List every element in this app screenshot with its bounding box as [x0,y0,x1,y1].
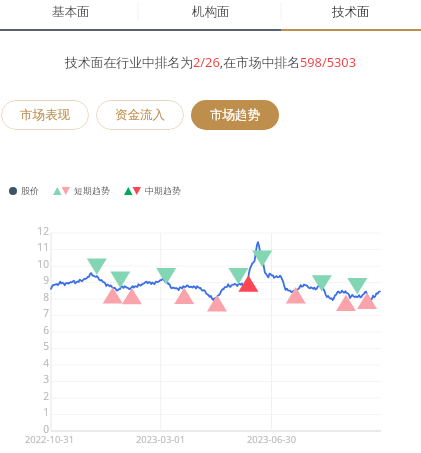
staticText: 11 [37,240,49,254]
staticText: 中期趋势 [145,185,181,196]
staticText: 股价 [21,185,39,196]
staticText: 市场趋势 [210,107,260,123]
button[interactable]: 市场表现 [1,100,89,130]
staticText: 9 [43,273,49,287]
button[interactable]: 技术面 [281,0,421,31]
staticText: 5 [43,339,49,353]
button[interactable]: 资金流入 [96,100,184,130]
staticText: 4 [43,356,49,370]
staticText: 2 [43,389,49,403]
staticText: 2022-10-31 [25,433,75,446]
staticText: 1 [43,405,49,419]
button[interactable]: 基本面 [0,0,141,31]
staticText: 10 [37,257,49,271]
button[interactable]: 机构面 [141,0,281,31]
staticText: 12 [37,224,49,238]
staticText: 2023-06-30 [247,433,297,446]
button[interactable]: 市场趋势 [191,100,279,130]
staticText: 资金流入 [115,107,165,123]
staticText: 基本面 [52,4,90,20]
staticText: 技术面在行业中排名为2/26,在市场中排名598/5303 [0,53,421,70]
staticText: 6 [43,323,49,337]
staticText: 3 [43,372,49,386]
staticText: 技术面 [332,4,370,20]
staticText: 短期趋势 [74,185,110,196]
staticText: 市场表现 [20,107,70,123]
staticText: 7 [43,306,49,320]
staticText: 机构面 [192,4,230,20]
staticText: 2023-03-01 [136,433,186,446]
staticText: 0 [43,422,49,436]
staticText: 8 [43,290,49,304]
